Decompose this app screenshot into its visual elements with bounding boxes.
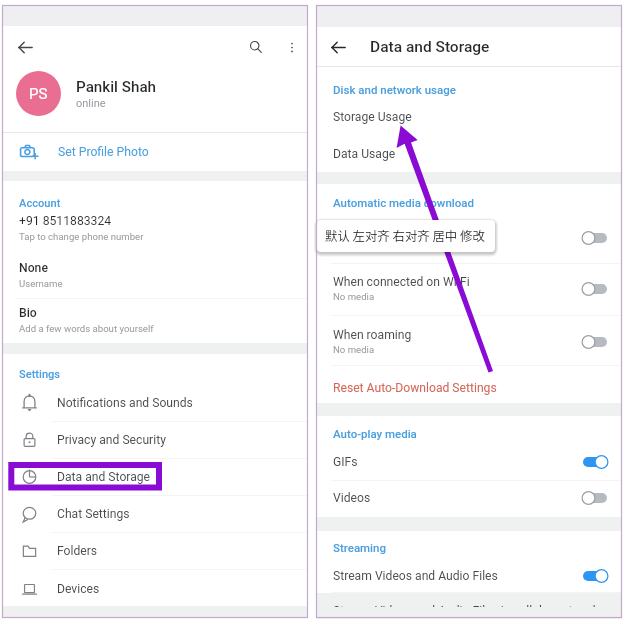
button[interactable]: Data and Storage <box>2 458 308 495</box>
staticText: Bio <box>19 306 37 320</box>
staticText: None <box>19 261 48 275</box>
button[interactable]: GIFs <box>316 447 622 477</box>
button[interactable]: Back <box>329 38 348 57</box>
staticText: Devices <box>57 582 100 596</box>
staticText: Stream Videos and Audio Files in cellula… <box>333 604 606 607</box>
staticText: When roaming <box>333 328 412 342</box>
staticText: No media <box>333 291 375 302</box>
button[interactable]: More options <box>287 41 297 54</box>
button[interactable]: Folders <box>2 532 308 569</box>
staticText: Notifications and Sounds <box>57 396 193 410</box>
staticText: Reset Auto-Download Settings <box>333 381 497 395</box>
staticText: Privacy and Security <box>57 433 166 447</box>
staticText: GIFs <box>333 455 358 469</box>
button[interactable]: Reset Auto-Download Settings <box>316 373 622 403</box>
staticText: Auto-play media <box>333 427 417 440</box>
staticText: When connected on Wi-Fi <box>333 275 470 289</box>
button[interactable]: Back <box>16 38 35 57</box>
button[interactable]: Data Usage <box>316 140 622 167</box>
staticText: Chat Settings <box>57 507 130 521</box>
staticText: Folders <box>57 544 98 558</box>
button[interactable]: Search <box>249 40 263 54</box>
staticText: Add a few words about yourself <box>19 323 154 334</box>
button[interactable]: Storage Usage <box>316 103 622 130</box>
staticText: PS <box>29 85 48 103</box>
staticText: online <box>76 97 106 110</box>
staticText: Tap to change phone number <box>19 231 144 242</box>
button[interactable]: Chat Settings <box>2 495 308 532</box>
staticText: No media <box>333 240 375 251</box>
button[interactable]: Bio <box>2 306 308 334</box>
button[interactable]: Devices <box>2 570 308 607</box>
staticText: Automatic media download <box>333 196 475 209</box>
button[interactable]: PS <box>2 71 308 116</box>
staticText: When using mobile data <box>333 224 463 238</box>
button[interactable]: Stream Videos and Audio Files <box>316 561 622 591</box>
button[interactable]: When using mobile data <box>316 219 622 256</box>
staticText: Storage Usage <box>333 110 412 124</box>
staticText: No media <box>333 344 375 355</box>
staticText: Settings <box>19 368 61 381</box>
staticText: Streaming <box>333 541 386 554</box>
staticText: Account <box>19 197 61 210</box>
staticText: +91 8511883324 <box>19 214 112 228</box>
staticText: Data and Storage <box>57 470 151 484</box>
staticText: Stream Videos and Audio Files <box>333 569 498 583</box>
staticText: Data Usage <box>333 147 396 161</box>
staticText: Videos <box>333 491 371 505</box>
button[interactable]: +91 8511883324 <box>2 214 308 242</box>
staticText: Disk and network usage <box>333 83 456 96</box>
staticText: Set Profile Photo <box>58 145 149 159</box>
staticText: Pankil Shah <box>76 78 157 96</box>
button[interactable]: Set Profile Photo <box>2 133 308 171</box>
button[interactable]: When roaming <box>316 323 622 360</box>
button[interactable]: Privacy and Security <box>2 421 308 458</box>
button[interactable]: None <box>2 261 308 289</box>
staticText: 默认 左对齐 右对齐 居中 修改 <box>325 227 485 245</box>
staticText: Username <box>19 278 63 289</box>
button[interactable]: When connected on Wi-Fi <box>316 270 622 307</box>
staticText: Data and Storage <box>370 38 490 56</box>
button[interactable]: Videos <box>316 483 622 513</box>
button[interactable]: Notifications and Sounds <box>2 384 308 421</box>
